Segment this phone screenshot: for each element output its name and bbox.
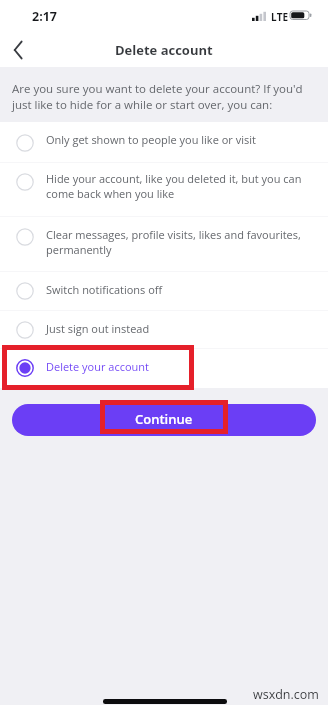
staticText: Delete your account — [46, 359, 149, 374]
button[interactable]: Back — [0, 32, 40, 67]
button[interactable]: Clear messages, profile visits, likes an… — [0, 217, 328, 271]
staticText: Only get shown to people you like or vis… — [46, 132, 256, 147]
staticText: LTE — [271, 10, 289, 24]
button[interactable]: Delete your account — [0, 349, 328, 388]
staticText: Clear messages, profile visits, likes an… — [46, 227, 306, 257]
staticText: Hide your account, like you deleted it, … — [46, 171, 306, 201]
staticText: Continue — [135, 410, 193, 428]
button[interactable]: Just sign out instead — [0, 311, 328, 348]
button[interactable]: Switch notifications off — [0, 272, 328, 310]
button[interactable]: Hide your account, like you deleted it, … — [0, 163, 328, 216]
staticText: Switch notifications off — [46, 282, 163, 297]
button[interactable]: Only get shown to people you like or vis… — [0, 122, 328, 162]
staticText: 2:17 — [32, 8, 58, 25]
staticText: Just sign out instead — [46, 321, 150, 336]
button[interactable]: Continue — [12, 404, 316, 436]
staticText: wsxdn.com — [253, 686, 319, 703]
staticText: Delete account — [115, 41, 213, 59]
staticText: Are you sure you want to delete your acc… — [12, 81, 315, 113]
